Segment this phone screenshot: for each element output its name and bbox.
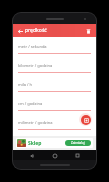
button[interactable]: kilometr / godzina bbox=[13, 58, 96, 77]
button[interactable]: Back bbox=[27, 151, 36, 160]
button[interactable]: Zainstaluj bbox=[65, 140, 91, 146]
button[interactable]: Sklep bbox=[16, 138, 93, 148]
button[interactable]: metr / sekunda bbox=[13, 39, 96, 58]
button[interactable]: Home bbox=[50, 151, 59, 160]
button[interactable]: Recents bbox=[73, 151, 82, 160]
staticText: milimetr / godzina bbox=[18, 120, 53, 125]
button[interactable]: Add bbox=[81, 115, 91, 125]
button[interactable]: milimetr / godzina bbox=[13, 115, 96, 134]
staticText: prędkość bbox=[25, 27, 83, 34]
button[interactable]: mila / h bbox=[13, 77, 96, 96]
button[interactable]: Delete bbox=[83, 26, 93, 36]
staticText: cm / godzina bbox=[18, 101, 43, 106]
staticText: mila / h bbox=[18, 82, 33, 87]
staticText: Sklep bbox=[28, 140, 42, 147]
button[interactable]: Back bbox=[15, 26, 25, 36]
staticText: kilometr / godzina bbox=[18, 63, 53, 68]
staticText: Zainstaluj bbox=[71, 141, 85, 145]
button[interactable]: cm / godzina bbox=[13, 96, 96, 115]
staticText: metr / sekunda bbox=[18, 44, 47, 49]
